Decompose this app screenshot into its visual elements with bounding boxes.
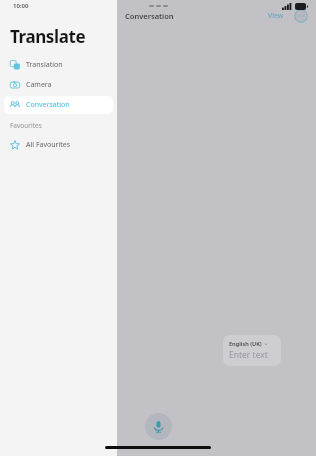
staticText: Translation bbox=[26, 60, 63, 70]
staticText: 10:00 bbox=[13, 2, 29, 10]
button[interactable]: English (UK) bbox=[223, 335, 281, 366]
staticText: Conversation bbox=[125, 11, 174, 21]
staticText: Conversation bbox=[26, 100, 70, 110]
button[interactable]: Camera bbox=[4, 76, 113, 94]
button[interactable]: All Favourites bbox=[4, 136, 113, 154]
button[interactable]: View bbox=[265, 9, 287, 23]
button[interactable]: Translation bbox=[4, 56, 113, 74]
button[interactable]: More options bbox=[294, 9, 308, 23]
staticText: Favourites bbox=[10, 121, 42, 130]
staticText: English (UK) bbox=[229, 340, 262, 347]
staticText: All Favourites bbox=[26, 140, 71, 150]
staticText: Camera bbox=[26, 80, 52, 90]
staticText: Translate bbox=[10, 25, 86, 48]
button[interactable]: Conversation bbox=[4, 96, 113, 114]
staticText: View bbox=[268, 11, 284, 21]
button[interactable]: Microphone bbox=[145, 413, 172, 440]
staticText: Enter text bbox=[229, 349, 268, 361]
